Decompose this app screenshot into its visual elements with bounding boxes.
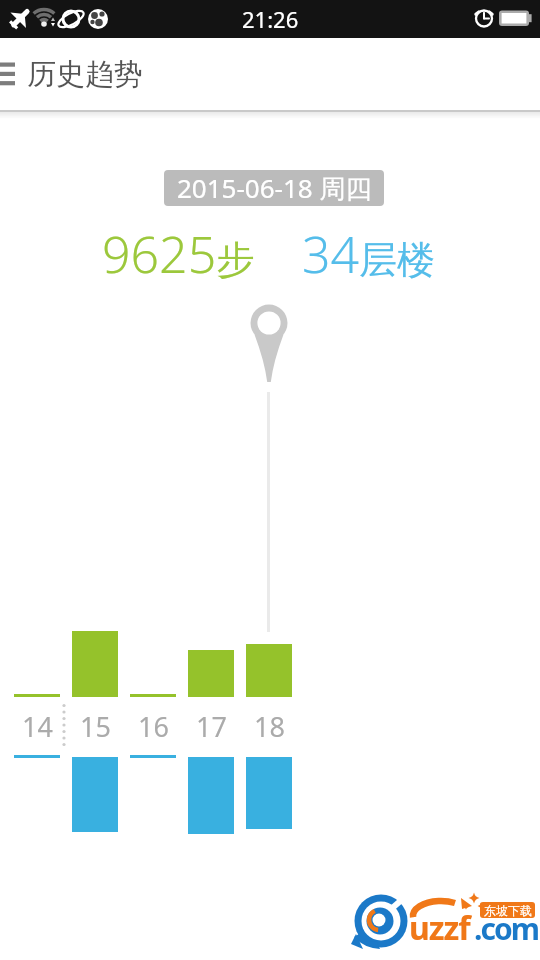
button[interactable]: 16 — [130, 708, 176, 744]
button[interactable] — [0, 38, 20, 110]
staticText: 16 — [138, 708, 169, 744]
staticText: 15 — [80, 708, 111, 744]
button[interactable]: 14 — [14, 708, 60, 744]
staticText: 21:26 — [242, 4, 299, 34]
staticText: .com — [474, 908, 538, 949]
button[interactable]: 18 — [246, 708, 292, 744]
button[interactable]: 9625步 — [102, 220, 255, 288]
staticText: 14 — [22, 708, 53, 744]
button[interactable]: 34层楼 — [302, 220, 436, 288]
staticText: uzzf — [409, 906, 470, 950]
staticText: 历史趋势 — [27, 56, 143, 93]
button[interactable]: 2015-06-18 周四 — [164, 170, 384, 206]
staticText: 17 — [196, 708, 227, 744]
staticText: 东坡下载 — [484, 903, 532, 918]
button[interactable]: 17 — [188, 708, 234, 744]
button[interactable]: 15 — [72, 708, 118, 744]
staticText: 18 — [254, 708, 285, 744]
staticText: 2015-06-18 周四 — [177, 170, 372, 206]
